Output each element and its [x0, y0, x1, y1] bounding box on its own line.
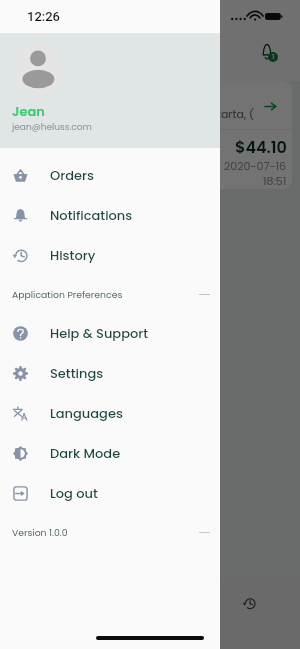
- staticText: Version 1.0.0: [12, 526, 68, 539]
- button[interactable]: Dark Mode: [0, 433, 220, 473]
- button[interactable]: Jean: [0, 33, 220, 148]
- button[interactable]: Settings: [0, 353, 220, 393]
- staticText: Jean: [12, 102, 45, 120]
- button[interactable]: Notifications: [0, 195, 220, 235]
- staticText: 12:26: [27, 9, 61, 24]
- staticText: Jakarta, (: [202, 106, 255, 121]
- staticText: 1: [272, 52, 275, 62]
- staticText: Orders: [50, 166, 94, 184]
- button[interactable]: History: [227, 590, 271, 616]
- staticText: Application Preferences: [12, 288, 123, 301]
- staticText: Help & Support: [50, 324, 149, 342]
- staticText: 2020-07-16: [224, 158, 287, 173]
- button[interactable]: Orders: [0, 155, 220, 195]
- button[interactable]: Notifications: [258, 43, 280, 65]
- staticText: $44.10: [235, 136, 287, 158]
- button[interactable]: Log out: [0, 473, 220, 513]
- staticText: Languages: [50, 404, 123, 422]
- button[interactable]: Help & Support: [0, 313, 220, 353]
- button[interactable]: Jakarta, (: [14, 81, 292, 189]
- button[interactable]: History: [0, 235, 220, 275]
- button[interactable]: Languages: [0, 393, 220, 433]
- staticText: Notifications: [50, 206, 133, 224]
- staticText: History: [50, 246, 96, 264]
- staticText: Log out: [50, 484, 98, 502]
- staticText: jean@heluss.com: [12, 121, 92, 134]
- staticText: Dark Mode: [50, 444, 121, 462]
- staticText: 18:51: [263, 173, 287, 188]
- staticText: Settings: [50, 364, 104, 382]
